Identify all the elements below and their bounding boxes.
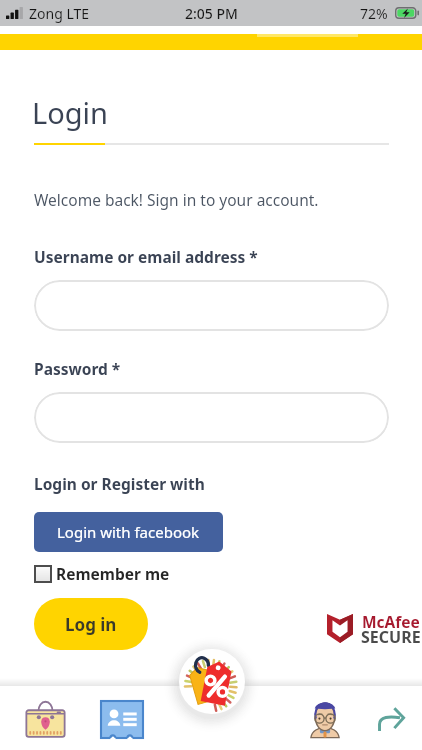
button[interactable]: Share	[358, 688, 422, 750]
button[interactable]: Deals	[179, 649, 245, 714]
button[interactable]	[34, 280, 389, 331]
button[interactable]: Contacts	[89, 688, 155, 750]
staticText: SECURE	[361, 626, 421, 648]
button[interactable]: McAfee Secure	[319, 607, 422, 647]
button[interactable]: Shop	[12, 688, 78, 750]
staticText: Zong LTE	[29, 4, 90, 23]
button[interactable]	[34, 392, 389, 443]
staticText: 2:05 PM	[185, 4, 238, 23]
staticText: Remember me	[56, 563, 170, 584]
staticText: 72%	[360, 4, 388, 23]
staticText: Password *	[34, 358, 121, 379]
button[interactable]: Remember me	[34, 563, 170, 584]
staticText: Welcome back! Sign in to your account.	[34, 189, 319, 210]
staticText: Login	[32, 93, 108, 132]
staticText: McAfee	[362, 611, 420, 632]
button[interactable]: Account	[292, 688, 358, 750]
staticText: Login with facebook	[57, 522, 200, 542]
staticText: Username or email address *	[34, 246, 258, 267]
staticText: Login or Register with	[34, 473, 205, 494]
button[interactable]: Login with facebook	[34, 512, 223, 552]
staticText: Log in	[65, 613, 117, 636]
button[interactable]: Log in	[34, 598, 148, 650]
